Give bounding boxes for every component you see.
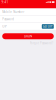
button[interactable]: LOGIN <box>2 33 54 39</box>
staticText: OTP <box>2 25 7 28</box>
staticText: Forgot Password? <box>30 41 53 45</box>
staticText: Mobile Number <box>2 10 24 14</box>
staticText: Password <box>2 17 14 21</box>
staticText: LOGIN <box>24 34 32 38</box>
button[interactable]: GET OTP <box>42 24 54 29</box>
button[interactable]: Forgot Password? <box>30 41 53 45</box>
staticText: GET OTP <box>43 25 53 28</box>
staticText: 9:41 <box>1 0 8 4</box>
